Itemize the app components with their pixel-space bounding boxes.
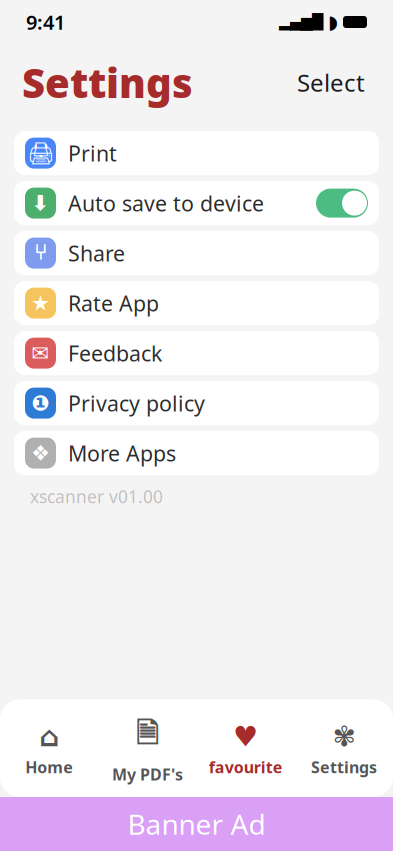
staticText: 9:41 — [26, 9, 65, 35]
staticText: ⬇ — [31, 191, 49, 215]
button[interactable]: 🗎 — [98, 711, 196, 787]
staticText: Privacy policy — [68, 389, 205, 417]
staticText: ❶ — [31, 391, 49, 415]
staticText: ❖ — [31, 441, 50, 465]
staticText: Print — [68, 139, 117, 167]
button[interactable]: ❖ — [14, 431, 379, 475]
staticText: Select — [297, 67, 365, 98]
staticText: Auto save to device — [68, 189, 264, 217]
button[interactable]: Select — [291, 61, 371, 104]
staticText: ▂▄▆█ — [279, 14, 323, 30]
staticText: ✉ — [31, 341, 49, 365]
button[interactable]: ✾ — [295, 719, 393, 780]
staticText: Feedback — [68, 339, 162, 367]
button[interactable]: ★ — [14, 281, 379, 325]
button[interactable]: 🖨 — [14, 131, 379, 175]
staticText: 🖨 — [27, 141, 54, 165]
staticText: xscanner v01.00 — [30, 485, 163, 508]
button[interactable]: ❶ — [14, 381, 379, 425]
staticText: More Apps — [68, 439, 176, 467]
staticText: ⑂ — [34, 243, 47, 263]
button[interactable]: ⑂ — [14, 231, 379, 275]
staticText: Home — [25, 756, 73, 778]
staticText: 🗎 — [136, 713, 159, 760]
button[interactable]: ✉ — [14, 331, 379, 375]
staticText: ♥ — [233, 721, 258, 752]
button[interactable]: ⬇ — [14, 181, 379, 225]
staticText: ★ — [31, 291, 50, 315]
staticText: Banner Ad — [127, 805, 265, 843]
button[interactable]: ♥ — [196, 719, 295, 780]
staticText: Share — [68, 239, 125, 267]
staticText: My PDF's — [112, 764, 183, 785]
button[interactable]: ⌂ — [0, 719, 98, 780]
staticText: Rate App — [68, 289, 159, 317]
staticText: favourite — [209, 756, 283, 778]
staticText: ✾ — [332, 721, 355, 752]
staticText: ◗ — [328, 11, 338, 33]
staticText: Settings — [311, 756, 377, 778]
staticText: Settings — [22, 56, 193, 109]
staticText: ⌂ — [39, 721, 59, 752]
